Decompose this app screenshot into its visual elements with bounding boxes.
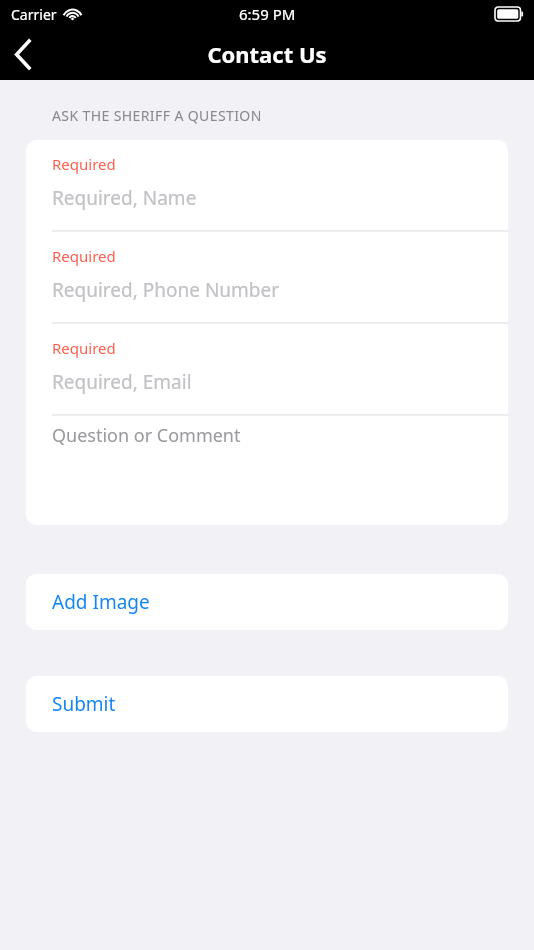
staticText: Add Image [52,589,150,615]
staticText: Contact Us [207,39,327,69]
button[interactable]: Add Image [26,574,508,630]
staticText: Required [52,246,116,266]
staticText: Required, Name [52,185,197,211]
staticText: 6:59 PM [239,4,296,24]
staticText: Required [52,338,116,358]
staticText: Submit [52,691,116,717]
button[interactable]: Required [26,232,508,324]
staticText: Required, Phone Number [52,277,280,303]
button[interactable]: Submit [26,676,508,732]
staticText: Question or Comment [52,423,241,448]
button[interactable]: Back [0,28,48,80]
staticText: Carrier [11,5,57,24]
button[interactable]: Required [26,324,508,416]
staticText: Required [52,154,116,174]
staticText: Required, Email [52,369,192,395]
button[interactable]: Question or Comment [26,416,508,525]
staticText: ASK THE SHERIFF A QUESTION [52,106,262,125]
button[interactable]: Required [26,140,508,232]
